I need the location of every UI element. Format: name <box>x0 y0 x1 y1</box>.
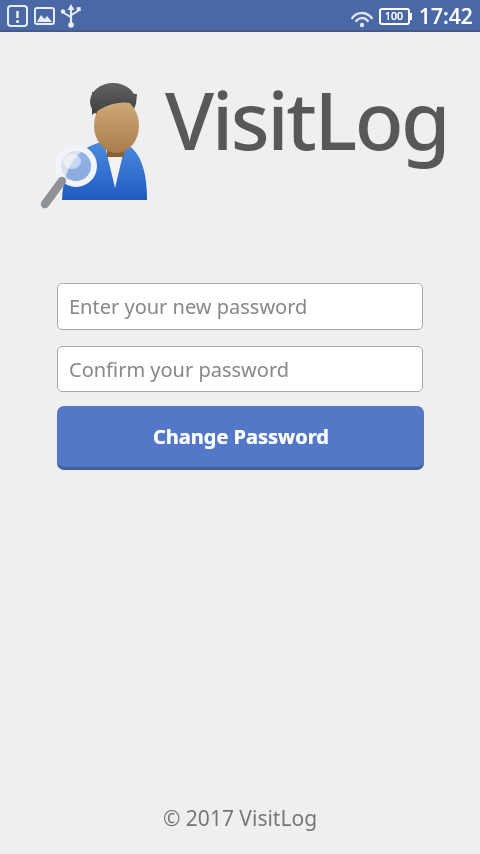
staticText: 100 <box>385 9 404 23</box>
button[interactable]: Change Password <box>57 406 424 467</box>
staticText: 17:42 <box>419 2 473 31</box>
staticText: Change Password <box>153 423 329 450</box>
staticText: Confirm your password <box>69 356 290 383</box>
button[interactable]: Confirm your password <box>57 346 423 392</box>
staticText: Enter your new password <box>69 293 308 320</box>
staticText: © 2017 VisitLog <box>0 804 480 833</box>
staticText: VisitLog <box>165 64 449 173</box>
button[interactable]: Enter your new password <box>57 283 423 330</box>
